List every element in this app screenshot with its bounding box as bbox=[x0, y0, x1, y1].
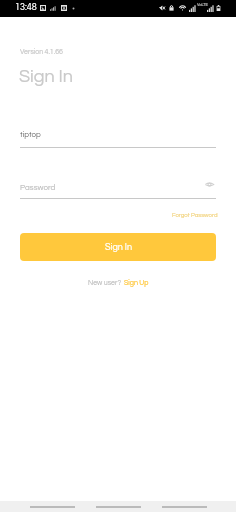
staticText: Sign In bbox=[105, 243, 132, 252]
staticText: Sign In bbox=[19, 67, 73, 86]
staticText: Password bbox=[20, 183, 56, 191]
button[interactable]: Show password bbox=[201, 176, 217, 192]
button[interactable]: Sign In bbox=[20, 233, 216, 261]
staticText: 13:48 bbox=[15, 3, 37, 12]
staticText: Forgot Password bbox=[172, 212, 218, 218]
button[interactable]: Home bbox=[85, 501, 151, 512]
button[interactable]: Sign Up bbox=[124, 279, 149, 286]
staticText: VoLTE bbox=[197, 3, 208, 7]
button[interactable]: Recents bbox=[151, 501, 217, 512]
button[interactable]: Forgot Password bbox=[169, 209, 221, 221]
staticText: Version 4.1.66 bbox=[20, 48, 63, 55]
button[interactable]: Back bbox=[19, 501, 85, 512]
staticText: Sign Up bbox=[124, 279, 149, 286]
staticText: tiptop bbox=[20, 130, 41, 138]
staticText: New user? bbox=[88, 279, 121, 286]
